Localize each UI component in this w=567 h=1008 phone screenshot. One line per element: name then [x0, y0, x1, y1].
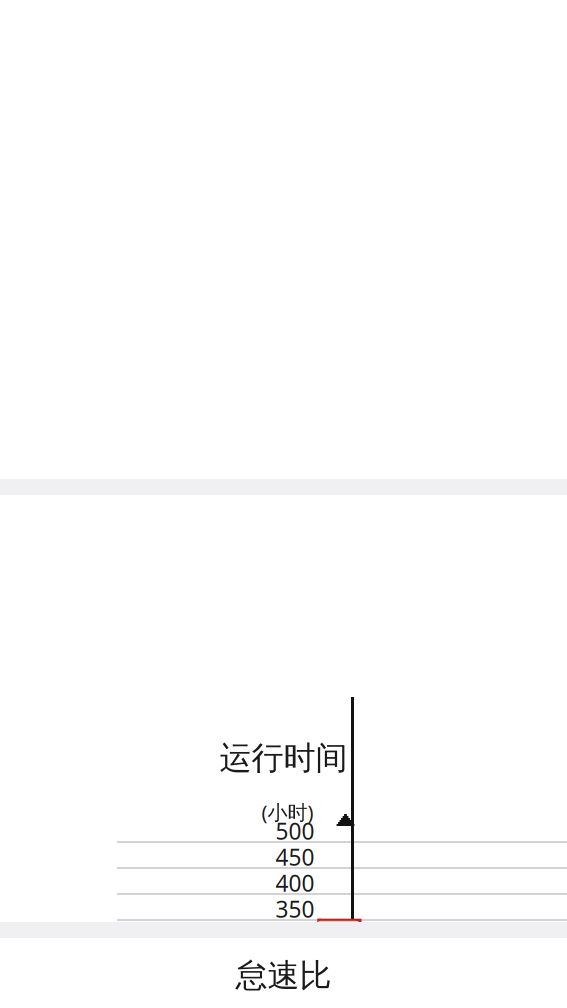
staticText: 235 [319, 920, 358, 950]
staticText: 200 [275, 972, 314, 1002]
staticText: 300 [275, 920, 314, 950]
staticText: 运行时间 [219, 738, 347, 778]
staticText: 450 [275, 842, 314, 872]
staticText: 350 [275, 894, 314, 924]
staticText: 400 [275, 868, 314, 898]
staticText: 250 [275, 946, 314, 976]
staticText: 229 [552, 923, 567, 953]
staticText: 怠速比 [235, 956, 331, 995]
staticText: 500 [275, 816, 314, 846]
staticText: (小时) [261, 799, 313, 825]
